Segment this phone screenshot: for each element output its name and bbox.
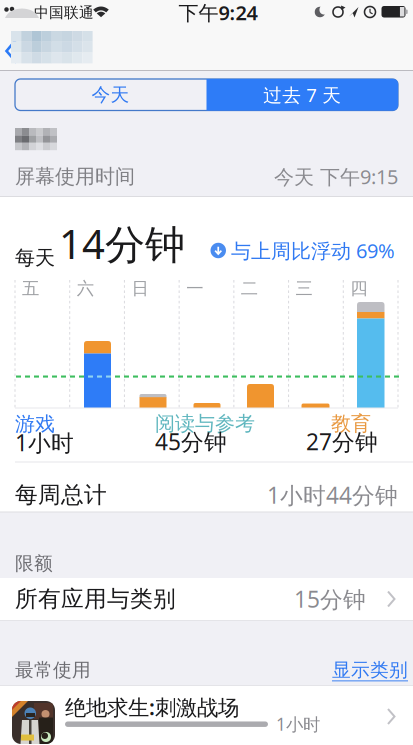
staticText: 每周总计 — [15, 481, 107, 509]
staticText: 日 — [131, 278, 148, 299]
staticText: 15分钟 — [294, 584, 366, 614]
staticText: 四 — [350, 278, 367, 299]
button[interactable]: 绝地求生:刺激战场 — [0, 686, 413, 745]
button[interactable]: 所有应用与类别 — [0, 578, 413, 620]
staticText: 中国联通 — [34, 3, 94, 21]
staticText: 六 — [77, 278, 94, 299]
staticText: 一 — [186, 278, 203, 299]
staticText: 五 — [22, 278, 39, 299]
staticText: 下午9:24 — [178, 0, 257, 26]
staticText: 三 — [296, 278, 313, 299]
staticText: 45分钟 — [155, 426, 227, 456]
staticText: 二 — [241, 278, 258, 299]
staticText: 绝地求生:刺激战场 — [65, 693, 239, 721]
staticText: 最常使用 — [15, 658, 91, 681]
staticText: 屏幕使用时间 — [15, 164, 135, 189]
staticText: 阅读与参考 — [155, 411, 255, 436]
staticText: 1小时44分钟 — [267, 480, 398, 510]
staticText: 限额 — [15, 552, 53, 575]
staticText: 所有应用与类别 — [15, 585, 176, 613]
staticText: 显示类别 — [332, 658, 408, 681]
staticText: 与上周比浮动 69% — [231, 237, 395, 264]
button[interactable]: 过去 7 天 — [206, 79, 398, 110]
staticText: 27分钟 — [306, 426, 378, 456]
staticText: 1小时 — [276, 712, 320, 735]
button[interactable]: 显示类别 — [332, 658, 408, 681]
staticText: 14分钟 — [59, 217, 185, 270]
button[interactable]: 返回 — [0, 30, 95, 66]
staticText: 今天 — [91, 83, 129, 106]
staticText: 过去 7 天 — [263, 82, 341, 107]
staticText: 今天 下午9:15 — [274, 163, 398, 190]
staticText: 1小时 — [15, 427, 74, 457]
button[interactable]: 今天 — [15, 79, 206, 110]
staticText: 每天 — [15, 245, 55, 270]
staticText: 游戏 — [15, 412, 55, 436]
staticText: 教育 — [331, 411, 371, 436]
